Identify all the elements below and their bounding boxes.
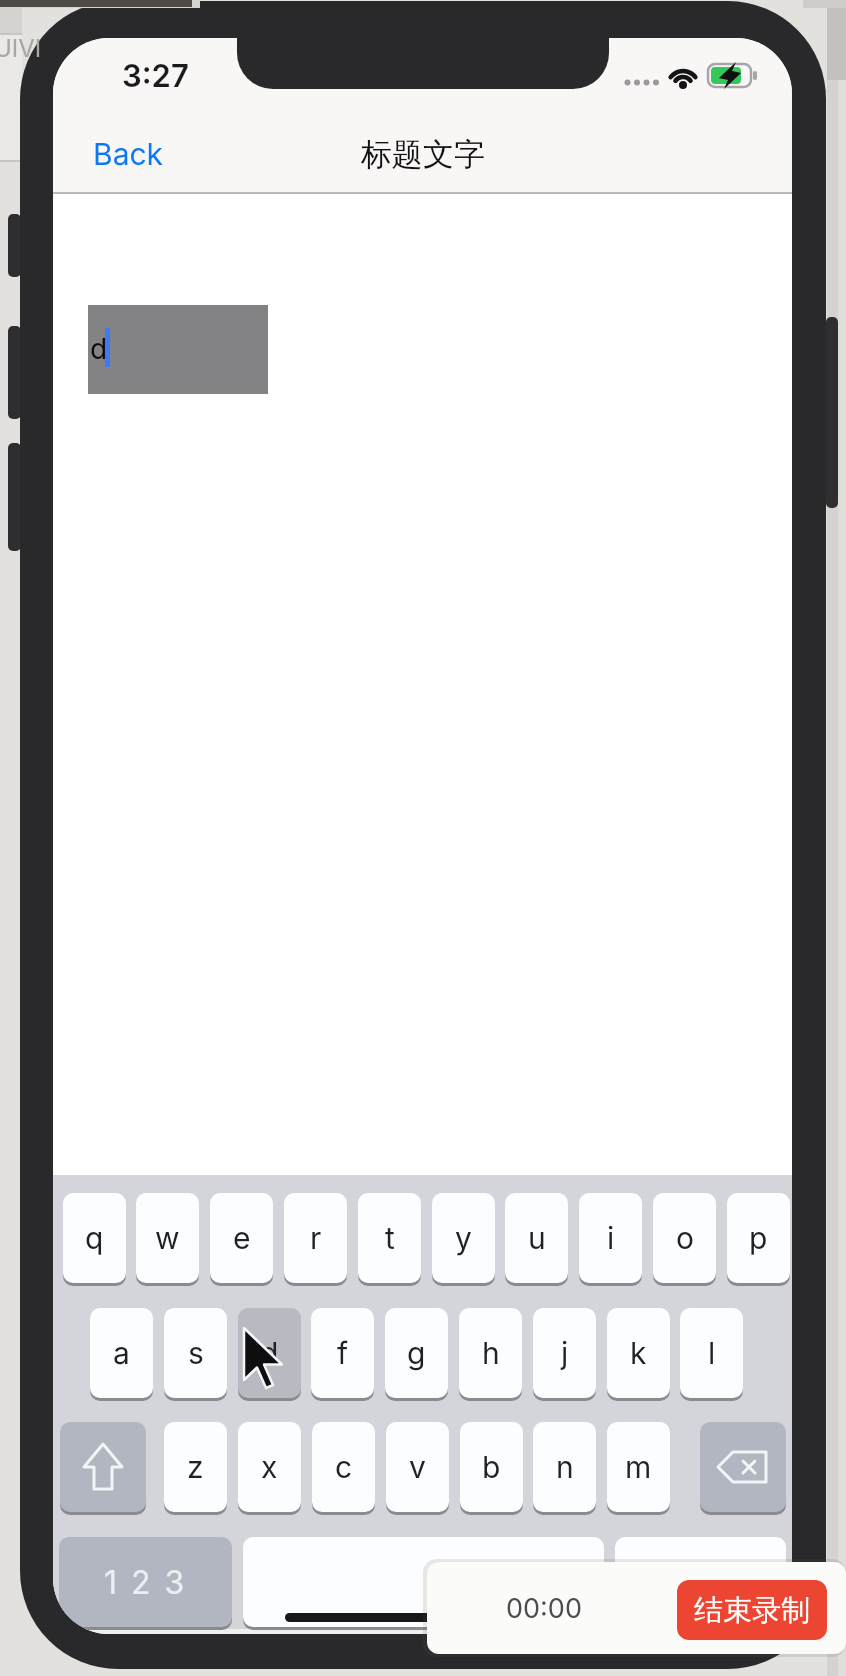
staticText: h — [482, 1335, 500, 1371]
staticText: e — [233, 1220, 251, 1256]
staticText: v — [409, 1449, 426, 1485]
staticText: s — [188, 1335, 204, 1371]
staticText: 1 2 3 — [104, 1563, 187, 1602]
staticText: 标题文字 — [361, 135, 485, 174]
button[interactable]: t — [358, 1193, 421, 1283]
staticText: n — [556, 1449, 574, 1485]
staticText: k — [630, 1335, 647, 1371]
button[interactable]: g — [385, 1308, 448, 1398]
staticText: Back — [93, 136, 164, 172]
button[interactable]: q — [63, 1193, 126, 1283]
button[interactable]: h — [459, 1308, 522, 1398]
staticText: b — [482, 1449, 501, 1485]
staticText: 00:00 — [506, 1592, 582, 1625]
staticText: UIVI — [0, 34, 42, 63]
button[interactable]: 结束录制 — [677, 1580, 827, 1640]
button[interactable]: l — [680, 1308, 743, 1398]
staticText: i — [607, 1220, 615, 1256]
button[interactable]: e — [210, 1193, 273, 1283]
staticText: a — [113, 1335, 130, 1371]
staticText: y — [455, 1220, 472, 1256]
staticText: f — [337, 1335, 349, 1371]
button[interactable]: n — [533, 1422, 596, 1512]
staticText: 结束录制 — [694, 1592, 810, 1629]
staticText: p — [749, 1220, 768, 1256]
button[interactable] — [615, 1537, 786, 1627]
staticText: w — [155, 1220, 180, 1256]
button[interactable]: d — [88, 305, 268, 394]
button[interactable]: r — [284, 1193, 347, 1283]
button[interactable]: o — [653, 1193, 716, 1283]
staticText: d — [260, 1335, 279, 1371]
staticText: g — [407, 1335, 426, 1371]
button[interactable] — [243, 1537, 604, 1627]
button[interactable]: b — [460, 1422, 523, 1512]
staticText: z — [187, 1449, 204, 1485]
staticText: l — [708, 1335, 716, 1371]
button[interactable]: 1 2 3 — [59, 1537, 232, 1627]
button[interactable]: s — [164, 1308, 227, 1398]
staticText: t — [385, 1220, 395, 1256]
staticText: m — [625, 1449, 652, 1485]
staticText: j — [561, 1335, 569, 1371]
button[interactable]: p — [727, 1193, 790, 1283]
staticText: 3:27 — [122, 57, 189, 95]
button[interactable]: x — [238, 1422, 301, 1512]
button[interactable]: c — [312, 1422, 375, 1512]
button[interactable]: m — [607, 1422, 670, 1512]
button[interactable] — [60, 1422, 146, 1512]
staticText: q — [85, 1220, 104, 1256]
button[interactable]: a — [90, 1308, 153, 1398]
button[interactable] — [700, 1422, 786, 1512]
button[interactable]: f — [311, 1308, 374, 1398]
button[interactable]: Back — [83, 133, 173, 175]
button[interactable]: w — [136, 1193, 199, 1283]
button[interactable]: k — [607, 1308, 670, 1398]
staticText: r — [310, 1220, 322, 1256]
staticText: d — [90, 332, 108, 366]
button[interactable]: v — [386, 1422, 449, 1512]
staticText: x — [261, 1449, 278, 1485]
button[interactable]: u — [505, 1193, 568, 1283]
button[interactable]: i — [579, 1193, 642, 1283]
staticText: o — [676, 1220, 694, 1256]
staticText: u — [528, 1220, 546, 1256]
staticText: c — [335, 1449, 353, 1485]
button[interactable]: d — [238, 1308, 301, 1398]
button[interactable]: z — [164, 1422, 227, 1512]
button[interactable]: j — [533, 1308, 596, 1398]
button[interactable]: y — [432, 1193, 495, 1283]
